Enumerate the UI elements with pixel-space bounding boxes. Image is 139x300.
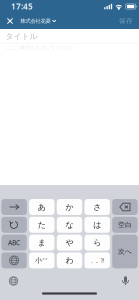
staticText: わ <box>65 255 73 265</box>
staticText: タイトル <box>5 31 37 41</box>
staticText: さ <box>93 202 101 212</box>
button[interactable]: や <box>57 235 82 251</box>
button[interactable]: 削除 <box>112 199 138 215</box>
button[interactable]: キーボード切替 <box>5 273 22 288</box>
staticText: や <box>65 238 73 247</box>
button[interactable]: 、。?! <box>84 252 110 268</box>
button[interactable]: キーボード切替 <box>1 252 27 268</box>
staticText: 17:45 <box>11 1 33 12</box>
button[interactable]: は <box>84 217 110 233</box>
button[interactable]: 次へ <box>112 235 138 268</box>
staticText: 、。?! <box>91 257 104 264</box>
button[interactable]: 保存 <box>119 13 133 29</box>
button[interactable]: 空白 <box>112 217 138 233</box>
staticText: な <box>65 220 73 230</box>
staticText: あ <box>38 202 46 212</box>
staticText: ABC <box>8 238 20 247</box>
button[interactable]: 閉じる <box>3 13 16 29</box>
staticText: た <box>38 220 46 230</box>
staticText: 保存 <box>119 17 133 25</box>
button[interactable]: ま <box>29 235 54 251</box>
staticText: 株式会社花菱 <box>20 18 50 24</box>
staticText: ま <box>38 238 46 247</box>
button[interactable]: ABC <box>1 235 27 251</box>
button[interactable]: 株式会社花菱 <box>20 13 56 29</box>
button[interactable]: 小ﾞﾟ <box>29 252 54 268</box>
button[interactable]: た <box>29 217 54 233</box>
button[interactable]: さ <box>84 199 110 215</box>
staticText: ら <box>93 238 101 247</box>
button[interactable]: わ <box>57 252 82 268</box>
button[interactable]: 取り消し <box>1 217 27 233</box>
staticText: ここに本文を入力してください <box>5 44 75 51</box>
button[interactable]: カーソル移動 <box>1 199 27 215</box>
button[interactable]: あ <box>29 199 54 215</box>
staticText: は <box>93 220 101 230</box>
staticText: か <box>65 202 73 212</box>
button[interactable]: 音声入力 <box>117 273 134 288</box>
button[interactable]: ら <box>84 235 110 251</box>
staticText: 空白 <box>118 221 132 229</box>
staticText: 小ﾞﾟ <box>35 256 48 264</box>
button[interactable]: な <box>57 217 82 233</box>
staticText: 次へ <box>118 247 132 256</box>
button[interactable]: か <box>57 199 82 215</box>
